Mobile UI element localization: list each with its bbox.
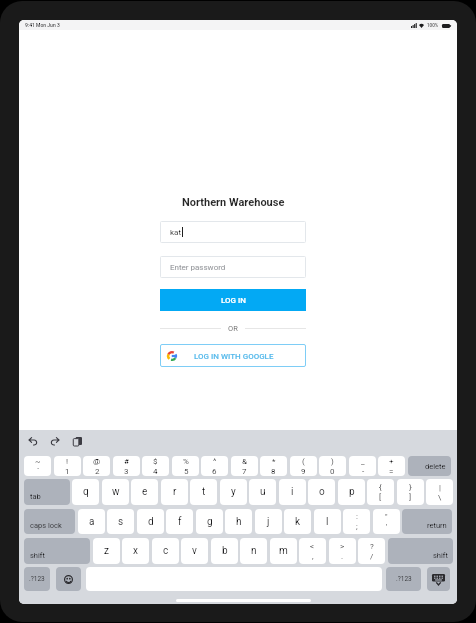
button[interactable]: kat (160, 221, 306, 243)
button[interactable]: ! (54, 456, 81, 476)
button[interactable]: z (93, 538, 120, 564)
staticText: shift (433, 551, 448, 560)
button[interactable]: x (122, 538, 149, 564)
button[interactable]: c (152, 538, 179, 564)
button[interactable]: v (181, 538, 208, 564)
button[interactable]: w (102, 479, 129, 505)
button[interactable]: shift (24, 538, 90, 564)
button[interactable]: u (249, 479, 276, 505)
staticText: x (133, 545, 138, 557)
button[interactable]: _ (349, 456, 376, 476)
button[interactable]: { (367, 479, 394, 505)
button[interactable]: t (190, 479, 217, 505)
button[interactable]: s (107, 509, 134, 534)
button[interactable]: ^ (201, 456, 228, 476)
button[interactable]: o (308, 479, 335, 505)
staticText: b (222, 545, 228, 557)
staticText: n (251, 545, 257, 557)
staticText: k (295, 516, 301, 528)
button[interactable]: m (270, 538, 297, 564)
button[interactable]: Paste (71, 435, 83, 447)
staticText: return (427, 521, 447, 530)
button[interactable]: ~ (24, 456, 51, 476)
button[interactable]: y (220, 479, 247, 505)
staticText: Northern Warehouse (182, 196, 285, 209)
button[interactable]: LOG IN (160, 289, 306, 311)
button[interactable]: i (279, 479, 306, 505)
staticText: 3 (124, 467, 129, 476)
button[interactable]: ) (319, 456, 346, 476)
staticText: * (272, 457, 276, 466)
staticText: " (385, 512, 388, 521)
staticText: j (267, 516, 270, 528)
staticText: m (279, 545, 288, 557)
staticText: , (312, 552, 314, 561)
button[interactable]: @ (83, 456, 110, 476)
button[interactable]: } (397, 479, 424, 505)
button[interactable]: caps lock (24, 509, 75, 534)
button[interactable]: .?123 (24, 567, 50, 591)
button[interactable]: g (196, 509, 223, 534)
staticText: h (236, 516, 242, 528)
staticText: ! (66, 457, 69, 466)
staticText: i (291, 486, 294, 498)
button[interactable]: > (329, 538, 356, 564)
button[interactable]: delete (408, 456, 451, 476)
staticText: ? (370, 542, 374, 551)
button[interactable]: r (161, 479, 188, 505)
button[interactable]: a (78, 509, 105, 534)
button[interactable]: tab (24, 479, 70, 505)
button[interactable]: ? (358, 538, 385, 564)
button[interactable]: $ (142, 456, 169, 476)
staticText: kat (170, 228, 182, 237)
button[interactable]: n (240, 538, 267, 564)
button[interactable]: % (172, 456, 199, 476)
button[interactable]: : (343, 509, 370, 534)
button[interactable]: Enter password (160, 256, 306, 278)
button[interactable]: return (402, 509, 452, 534)
button[interactable]: k (284, 509, 311, 534)
button[interactable]: Hide keyboard (427, 567, 450, 591)
button[interactable]: | (426, 479, 453, 505)
staticText: .?123 (396, 575, 412, 583)
staticText: Enter password (170, 263, 226, 272)
button[interactable]: & (231, 456, 258, 476)
button[interactable]: d (137, 509, 164, 534)
staticText: | (439, 483, 441, 492)
button[interactable]: shift (388, 538, 453, 564)
staticText: tab (30, 492, 41, 501)
button[interactable]: f (166, 509, 193, 534)
staticText: y (231, 486, 236, 498)
button[interactable]: # (113, 456, 140, 476)
staticText: q (83, 486, 89, 498)
button[interactable]: Undo (27, 435, 39, 447)
button[interactable]: q (72, 479, 99, 505)
button[interactable]: " (373, 509, 400, 534)
staticText: p (349, 486, 355, 498)
staticText: LOG IN (221, 296, 246, 305)
staticText: & (242, 457, 247, 466)
button[interactable]: Redo (49, 435, 61, 447)
button[interactable]: LOG IN WITH GOOGLE (160, 344, 306, 367)
staticText: ; (356, 522, 358, 531)
staticText: u (260, 486, 266, 498)
staticText: [ (379, 493, 382, 502)
staticText: 6 (212, 467, 217, 476)
button[interactable]: < (299, 538, 326, 564)
button[interactable]: e (131, 479, 158, 505)
button[interactable]: h (225, 509, 252, 534)
button[interactable]: * (260, 456, 287, 476)
button[interactable]: p (338, 479, 365, 505)
button[interactable]: + (378, 456, 405, 476)
button[interactable]: Emoji (56, 567, 81, 591)
staticText: ` (37, 467, 40, 476)
button[interactable]: b (211, 538, 238, 564)
staticText: OR (228, 324, 238, 333)
button[interactable]: .?123 (386, 567, 421, 591)
button[interactable]: l (314, 509, 341, 534)
staticText: e (142, 486, 148, 498)
button[interactable]: ( (290, 456, 317, 476)
button[interactable]: j (255, 509, 282, 534)
staticText: ^ (213, 457, 217, 466)
